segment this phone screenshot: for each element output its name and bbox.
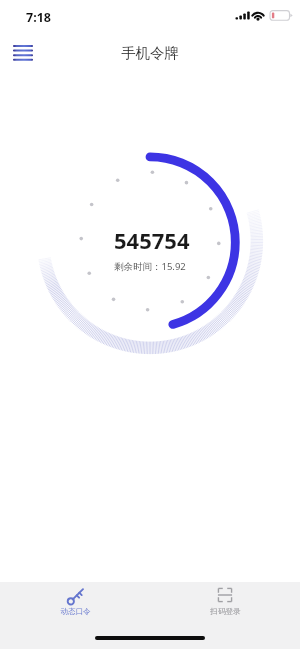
staticText: 545754 <box>114 225 190 255</box>
button[interactable]: 扫码登录 <box>150 587 300 617</box>
staticText: 手机令牌 <box>121 44 179 62</box>
button[interactable]: 动态口令 <box>0 587 150 617</box>
button[interactable]: Menu <box>5 35 41 71</box>
staticText: 剩余时间：15.92 <box>114 260 186 273</box>
staticText: 扫码登录 <box>210 607 241 617</box>
staticText: 7:18 <box>26 9 51 26</box>
staticText: 动态口令 <box>60 607 91 617</box>
